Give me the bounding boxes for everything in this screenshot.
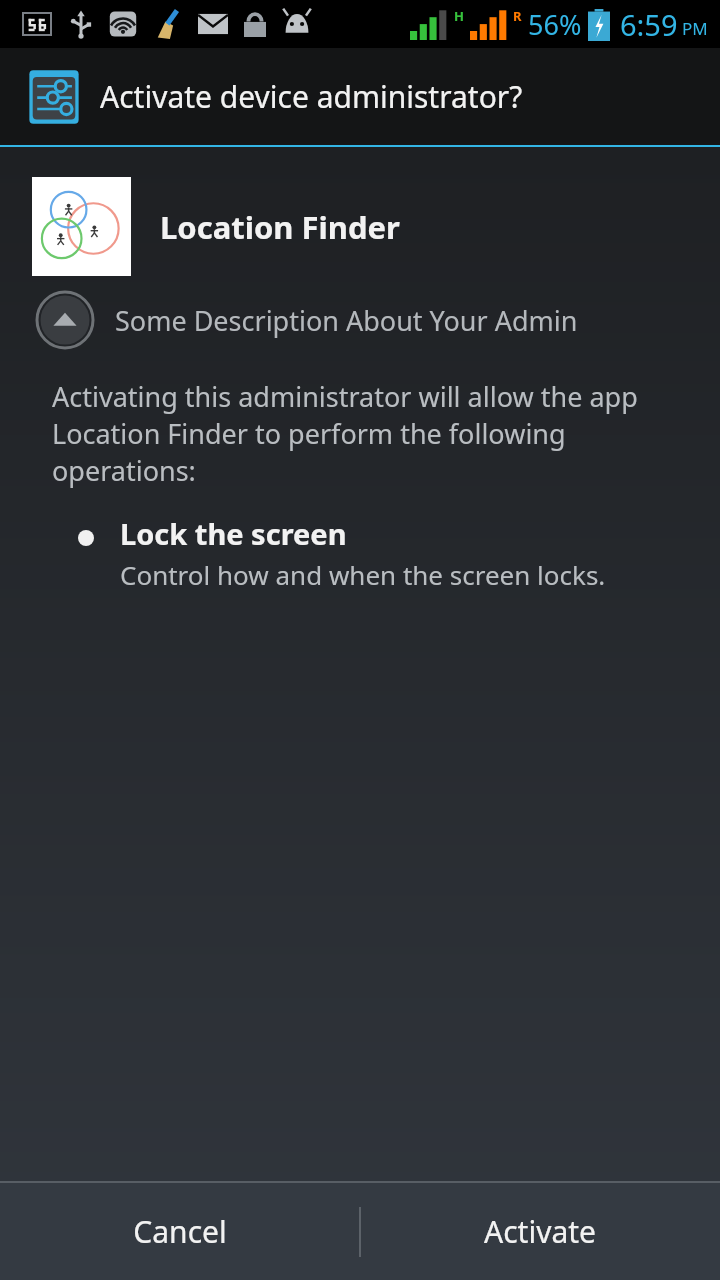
staticText: H: [454, 7, 464, 25]
staticText: Lock the screen: [120, 514, 347, 553]
staticText: PM: [682, 17, 708, 40]
button[interactable]: Activate: [360, 1183, 720, 1280]
staticText: Some Description About Your Admin: [115, 302, 578, 339]
staticText: Control how and when the screen locks.: [120, 557, 606, 592]
staticText: Cancel: [133, 1211, 227, 1252]
staticText: 56%: [528, 6, 582, 43]
staticText: Activate device administrator?: [100, 76, 523, 117]
staticText: Activating this administrator will allow…: [52, 378, 650, 489]
button[interactable]: Cancel: [0, 1183, 360, 1280]
button[interactable]: Collapse description: [36, 291, 94, 349]
staticText: R: [513, 7, 522, 25]
staticText: Activate: [484, 1211, 596, 1252]
staticText: Location Finder: [160, 206, 400, 248]
staticText: 6:59: [620, 5, 678, 44]
